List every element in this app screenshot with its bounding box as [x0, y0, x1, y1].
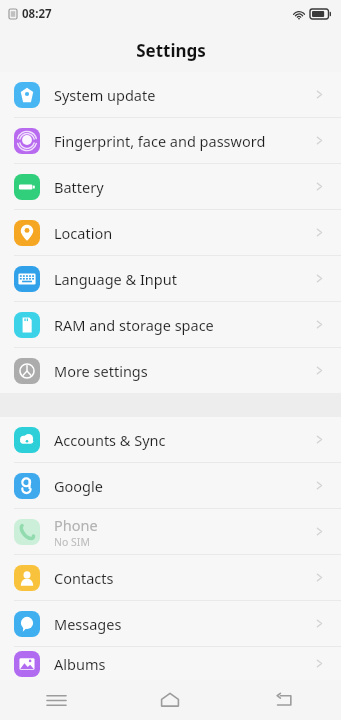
button[interactable]: Accounts & Sync: [0, 417, 341, 462]
staticText: Google: [54, 476, 103, 496]
staticText: 08:27: [22, 6, 52, 22]
button[interactable]: RAM and storage space: [0, 302, 341, 347]
staticText: Phone: [54, 515, 98, 535]
button[interactable]: Recent apps: [0, 680, 113, 720]
button[interactable]: Messages: [0, 601, 341, 646]
staticText: More settings: [54, 361, 148, 381]
staticText: Settings: [136, 39, 206, 62]
button[interactable]: Language & Input: [0, 256, 341, 301]
button[interactable]: Albums: [0, 647, 341, 680]
staticText: System update: [54, 85, 156, 105]
button[interactable]: Home: [113, 680, 227, 720]
button[interactable]: Google: [0, 463, 341, 508]
button[interactable]: Battery: [0, 164, 341, 209]
staticText: No SIM: [54, 535, 90, 549]
staticText: Messages: [54, 614, 122, 634]
button[interactable]: Location: [0, 210, 341, 255]
button[interactable]: System update: [0, 72, 341, 117]
button[interactable]: Contacts: [0, 555, 341, 600]
staticText: Location: [54, 223, 113, 243]
staticText: Albums: [54, 654, 106, 674]
button[interactable]: Back: [227, 680, 341, 720]
staticText: Accounts & Sync: [54, 430, 166, 450]
staticText: Fingerprint, face and password: [54, 131, 266, 151]
button[interactable]: Phone: [0, 509, 341, 554]
button[interactable]: More settings: [0, 348, 341, 393]
button[interactable]: Fingerprint, face and password: [0, 118, 341, 163]
staticText: RAM and storage space: [54, 315, 214, 335]
staticText: Battery: [54, 177, 104, 197]
staticText: Contacts: [54, 568, 114, 588]
staticText: Language & Input: [54, 269, 177, 289]
